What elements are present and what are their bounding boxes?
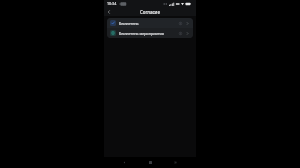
button[interactable]: Бюллетень	[107, 18, 193, 28]
button[interactable]: Открыть	[184, 30, 190, 36]
button[interactable]: Последние приложения	[170, 157, 181, 168]
button[interactable]: Назад	[104, 7, 113, 16]
button[interactable]: Информация	[177, 30, 184, 37]
button[interactable]: Информация	[177, 20, 184, 27]
staticText: Бюллетень	[119, 21, 177, 26]
staticText: Согласие	[140, 9, 160, 15]
button[interactable]: Назад	[119, 157, 130, 168]
staticText: 10:34	[107, 1, 117, 6]
button[interactable]: Открыть	[184, 20, 190, 26]
button[interactable]: Бюллетень мероприятия	[107, 28, 193, 38]
button[interactable]: Главный экран	[145, 157, 156, 168]
staticText: Бюллетень мероприятия	[119, 31, 177, 36]
